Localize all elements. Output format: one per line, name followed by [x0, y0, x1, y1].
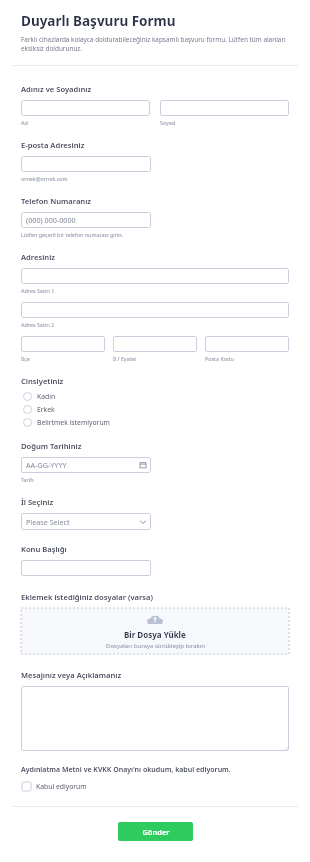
button[interactable]	[160, 100, 289, 116]
staticText: E-posta Adresiniz	[21, 140, 85, 150]
button[interactable]	[21, 336, 105, 352]
button[interactable]: Bir Dosya Yükle	[21, 608, 289, 654]
button[interactable]: Kadın	[21, 390, 289, 403]
staticText: Adres Satırı 1	[21, 287, 55, 294]
button[interactable]	[21, 100, 150, 116]
staticText: Gönder	[142, 827, 170, 837]
staticText: Ad	[21, 119, 28, 126]
staticText: Lütfen geçerli bir telefon numarası giri…	[21, 231, 124, 238]
button[interactable]: Belirtmek istemiyorum	[21, 416, 289, 429]
staticText: Telefon Numaranız	[21, 196, 91, 206]
button[interactable]	[21, 268, 289, 284]
button[interactable]: Gönder	[118, 822, 193, 841]
staticText: Adresiniz	[21, 252, 56, 262]
staticText: Soyad	[160, 119, 176, 126]
staticText: Aydınlatma Metni ve KVKK Onayı'nı okudum…	[21, 765, 231, 775]
staticText: Farklı cihazlarda kolayca doldurabileceğ…	[21, 35, 289, 53]
staticText: İlçe	[21, 355, 30, 362]
staticText: AA-GG-YYYY	[26, 460, 140, 470]
button[interactable]: Kabul ediyorum	[21, 780, 289, 792]
button[interactable]: Erkek	[21, 403, 289, 416]
button[interactable]: (000) 000-0000	[21, 212, 151, 228]
button[interactable]: AA-GG-YYYY	[21, 457, 151, 473]
staticText: Dosyaları buraya sürükleyip bırakın	[106, 642, 205, 650]
button[interactable]	[113, 336, 197, 352]
staticText: Konu Başlığı	[21, 544, 67, 554]
staticText: Adınız ve Soyadınız	[21, 84, 92, 94]
staticText: Tarih	[21, 476, 34, 483]
staticText: Erkek	[37, 405, 55, 414]
staticText: Mesajınız veya Açıklamanız	[21, 670, 122, 680]
staticText: Please Select	[26, 517, 140, 527]
staticText: Kabul ediyorum	[36, 782, 87, 791]
staticText: Adres Satırı 2	[21, 321, 55, 328]
button[interactable]: Please Select	[21, 513, 151, 530]
button[interactable]	[21, 156, 151, 172]
staticText: Duyarlı Başvuru Formu	[21, 12, 176, 30]
staticText: Kadın	[37, 392, 56, 401]
staticText: İl / Eyalet	[113, 355, 137, 362]
staticText: Posta Kodu	[205, 355, 234, 362]
staticText: (000) 000-0000	[26, 215, 146, 225]
staticText: Bir Dosya Yükle	[124, 629, 186, 640]
staticText: Eklemek istediğiniz dosyalar (varsa)	[21, 592, 153, 602]
button[interactable]	[21, 560, 151, 576]
staticText: Doğum Tarihiniz	[21, 441, 82, 451]
staticText: ornek@ornek.com	[21, 175, 68, 182]
button[interactable]	[205, 336, 289, 352]
staticText: Belirtmek istemiyorum	[37, 418, 110, 427]
staticText: Cinsiyetiniz	[21, 376, 64, 386]
staticText: İl Seçiniz	[21, 497, 54, 507]
button[interactable]	[21, 302, 289, 318]
button[interactable]	[21, 686, 289, 751]
